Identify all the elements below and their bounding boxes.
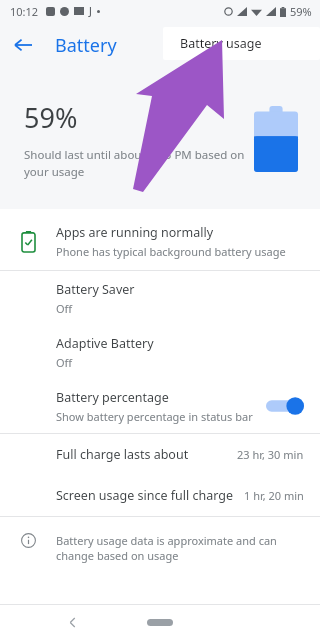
- staticText: Show battery percentage in status bar: [56, 409, 253, 424]
- staticText: Apps are running normally: [56, 224, 214, 241]
- button[interactable]: Battery percentage: [0, 379, 320, 433]
- button[interactable]: Full charge lasts about: [0, 434, 320, 475]
- button[interactable]: Adaptive Battery: [0, 325, 320, 379]
- staticText: Battery percentage: [56, 389, 169, 406]
- staticText: 1 hr, 20 min: [244, 488, 304, 503]
- staticText: Full charge lasts about: [56, 446, 237, 463]
- button[interactable]: Screen usage since full charge: [0, 475, 320, 516]
- staticText: 59%: [290, 4, 312, 19]
- button[interactable]: Apps are running normally: [0, 212, 320, 270]
- staticText: Phone has typical background battery usa…: [56, 244, 286, 259]
- staticText: Battery Saver: [56, 281, 135, 298]
- staticText: 59%: [24, 99, 78, 136]
- staticText: J: [89, 4, 92, 18]
- staticText: Screen usage since full charge: [56, 487, 244, 504]
- button[interactable]: Back: [0, 22, 46, 68]
- staticText: Off: [56, 355, 73, 370]
- staticText: 10:12: [10, 4, 39, 19]
- staticText: Off: [56, 301, 73, 316]
- staticText: Battery: [55, 33, 117, 58]
- staticText: Battery usage data is approximate and ca…: [56, 533, 302, 563]
- staticText: 23 hr, 30 min: [237, 447, 304, 462]
- button[interactable]: Home: [147, 619, 173, 626]
- staticText: Battery usage: [180, 35, 262, 52]
- button[interactable]: Back: [58, 608, 86, 636]
- staticText: Should last until about 7:45 PM based on…: [24, 147, 246, 179]
- button[interactable]: Battery Saver: [0, 271, 320, 325]
- button[interactable]: Battery usage: [163, 27, 320, 60]
- staticText: Adaptive Battery: [56, 335, 154, 352]
